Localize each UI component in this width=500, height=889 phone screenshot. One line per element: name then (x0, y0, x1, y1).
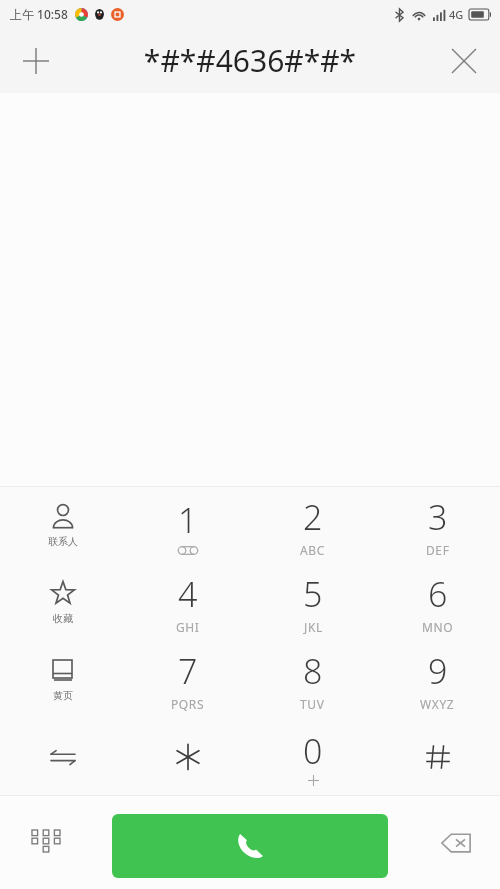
button[interactable]: 4 (125, 564, 250, 641)
button[interactable]: 3 (375, 487, 500, 564)
staticText: 上午 10:58 (10, 6, 68, 22)
button[interactable]: Add to contacts (8, 33, 64, 89)
button[interactable]: 0 (250, 718, 375, 795)
staticText: DEF (426, 542, 450, 558)
staticText: 收藏 (53, 612, 73, 625)
staticText: 6 (428, 571, 448, 617)
staticText: GHI (176, 619, 200, 635)
button[interactable] (125, 718, 250, 795)
staticText: ABC (300, 542, 325, 558)
staticText: 2 (303, 494, 323, 540)
staticText: *#*#4636#*#* (64, 40, 436, 81)
staticText: 0 (303, 728, 323, 774)
staticText: MNO (422, 619, 454, 635)
staticText: 3 (428, 494, 448, 540)
staticText: PQRS (171, 696, 205, 712)
button[interactable]: 7 (125, 641, 250, 718)
button[interactable]: 9 (375, 641, 500, 718)
staticText: 黄页 (53, 689, 73, 702)
staticText: 8 (303, 648, 323, 694)
staticText: TUV (300, 696, 325, 712)
button[interactable]: 5 (250, 564, 375, 641)
button[interactable]: Backspace (426, 813, 486, 873)
button[interactable]: 黄页 (0, 641, 125, 718)
staticText: 5 (303, 571, 323, 617)
staticText: 7 (178, 648, 198, 694)
staticText: 联系人 (48, 535, 78, 548)
button[interactable]: 2 (250, 487, 375, 564)
staticText: WXYZ (420, 696, 455, 712)
button[interactable]: 8 (250, 641, 375, 718)
staticText: 1 (178, 497, 198, 543)
button[interactable]: 6 (375, 564, 500, 641)
button[interactable]: Close (436, 33, 492, 89)
staticText: 4 (178, 571, 198, 617)
button[interactable]: Call (112, 814, 388, 878)
staticText: JKL (304, 619, 323, 635)
button[interactable]: 1 (125, 487, 250, 564)
button[interactable]: 收藏 (0, 564, 125, 641)
button[interactable]: Switch call mode (0, 718, 125, 795)
button[interactable]: Dialpad (16, 813, 76, 873)
staticText: 9 (428, 648, 448, 694)
button[interactable]: 联系人 (0, 487, 125, 564)
button[interactable] (375, 718, 500, 795)
staticText: 4G (449, 7, 464, 22)
